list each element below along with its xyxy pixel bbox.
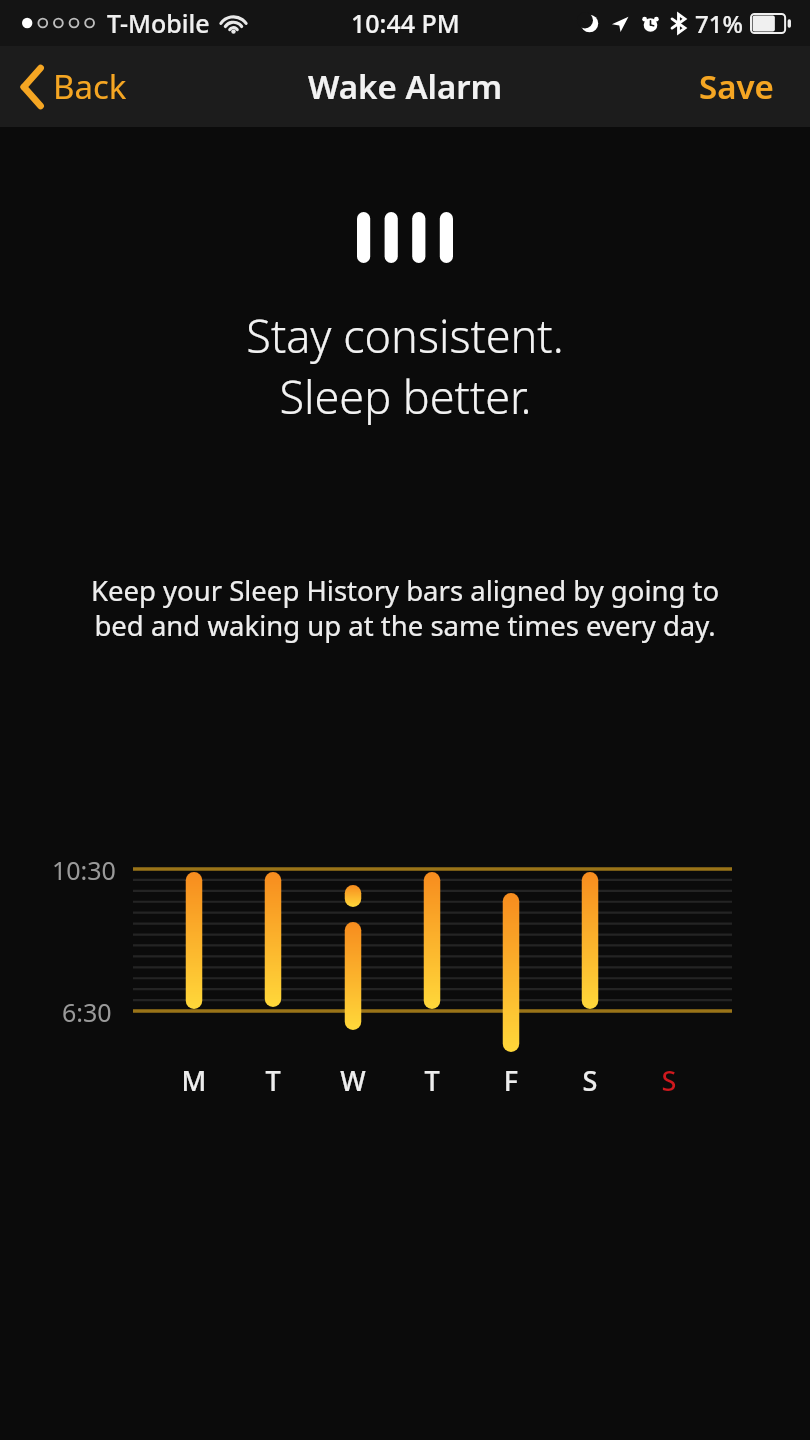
staticText: 6:30 [62,995,112,1029]
staticText: W [337,1062,369,1099]
staticText: T-Mobile [107,6,210,40]
button[interactable]: Save [675,54,810,119]
staticText: S [653,1062,685,1099]
staticText: F [495,1062,527,1099]
staticText: 10:30 [52,853,116,887]
staticText: Save [699,64,774,109]
staticText: 71% [695,7,743,40]
staticText: Stay consistent. [246,305,564,366]
staticText: Wake Alarm [308,64,503,109]
staticText: T [257,1062,289,1099]
staticText: Back [53,64,127,109]
staticText: S [574,1062,606,1099]
staticText: Sleep better. [279,366,532,427]
button[interactable]: Back [0,56,145,117]
staticText: T [416,1062,448,1099]
staticText: M [178,1062,210,1099]
staticText: Keep your Sleep History bars aligned by … [68,572,742,645]
staticText: 10:44 PM [351,6,460,40]
